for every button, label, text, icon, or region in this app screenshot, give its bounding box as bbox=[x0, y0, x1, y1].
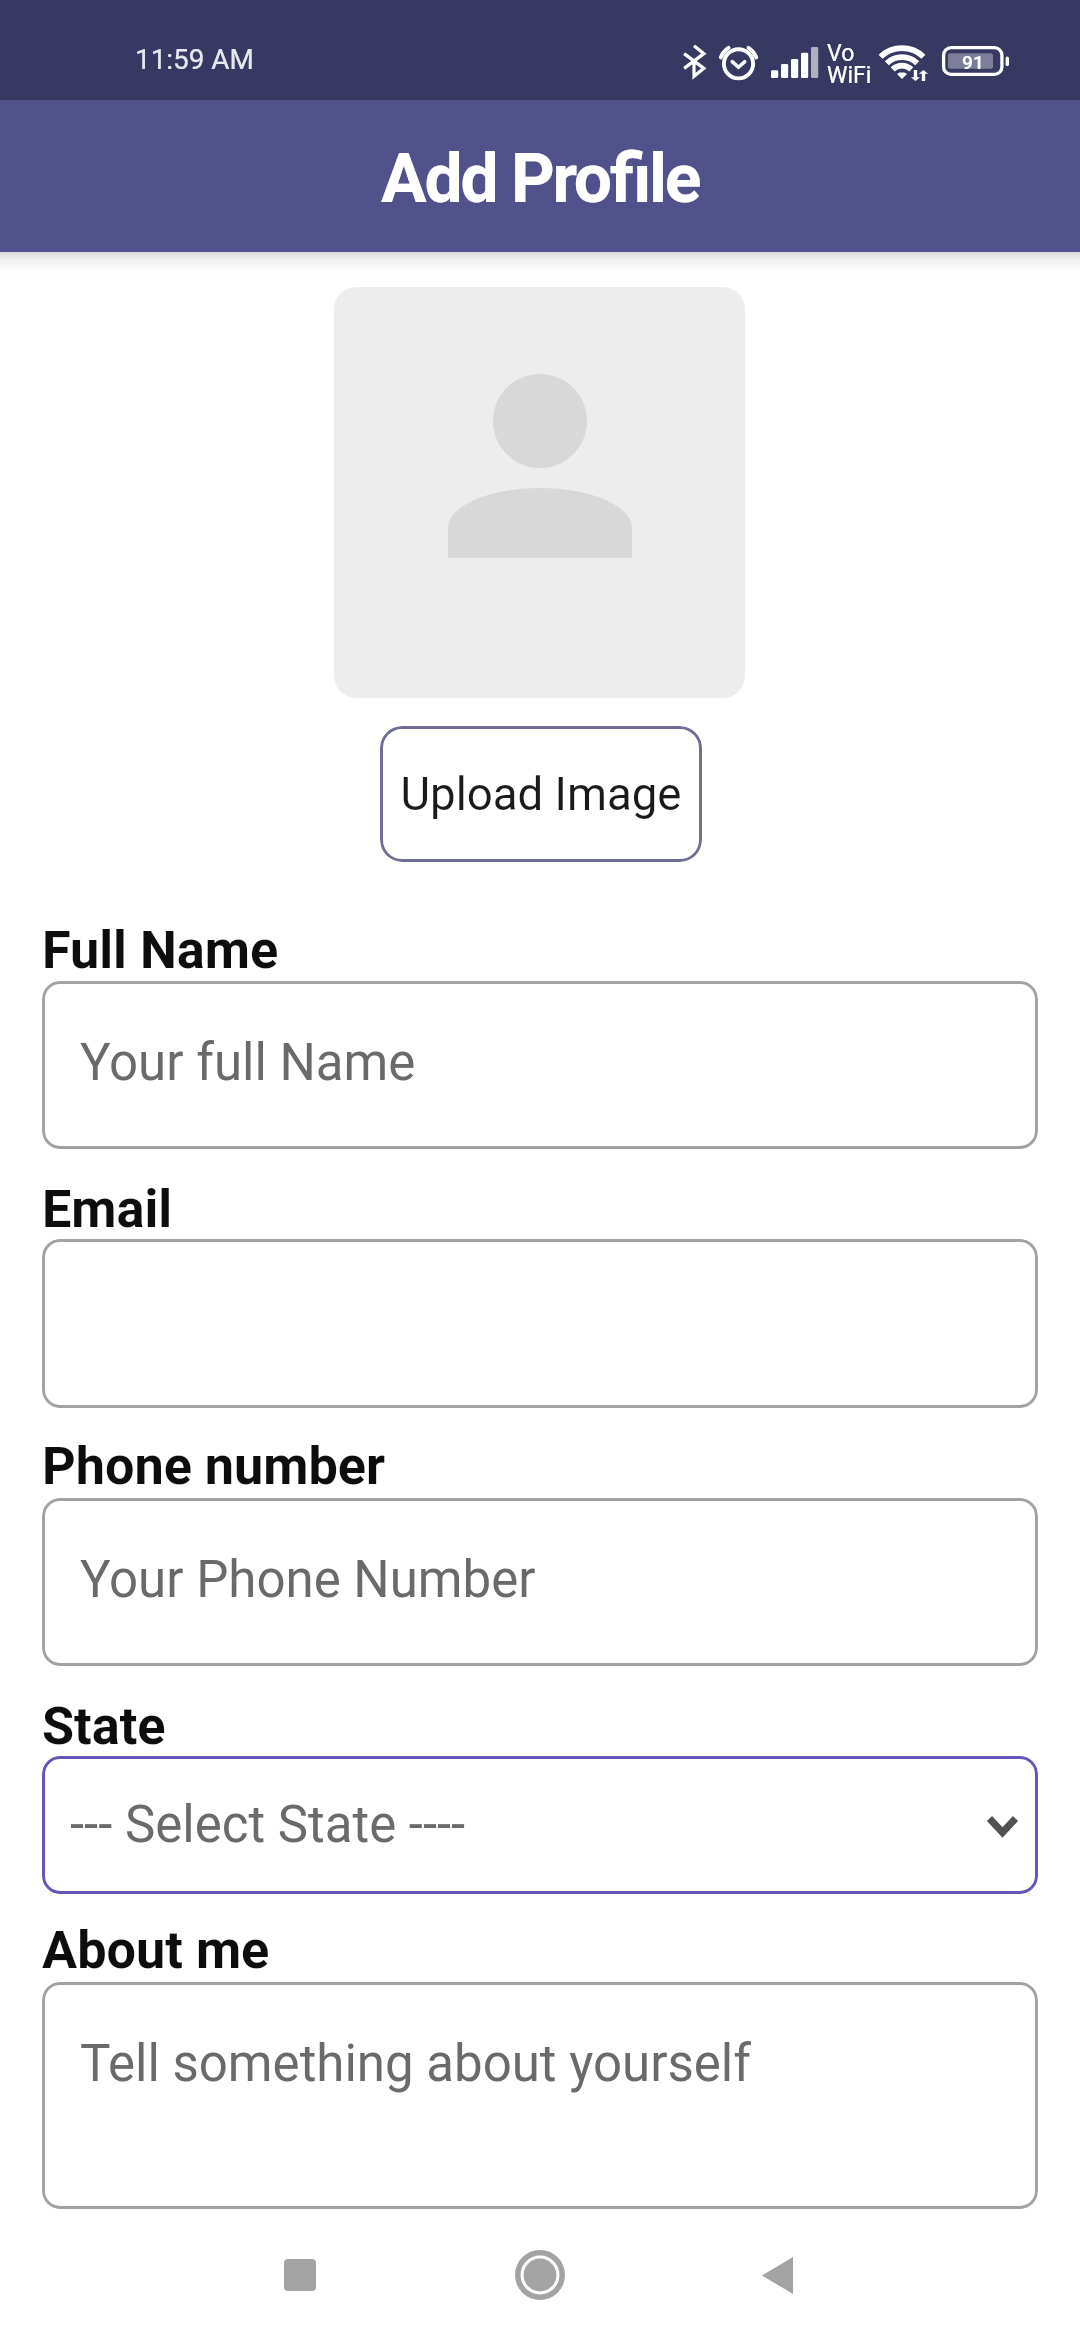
staticText: Full Name bbox=[42, 920, 279, 981]
staticText: Vo bbox=[827, 40, 855, 67]
staticText: Add Profile bbox=[381, 139, 700, 218]
staticText: --- Select State ---- bbox=[70, 1795, 466, 1855]
staticText: State bbox=[42, 1696, 166, 1757]
staticText: 91 bbox=[962, 51, 984, 74]
staticText: Phone number bbox=[42, 1436, 386, 1497]
button[interactable]: Back bbox=[717, 2215, 837, 2335]
staticText: Your full Name bbox=[80, 1033, 416, 1093]
button[interactable]: Tell something about yourself bbox=[42, 1982, 1038, 2209]
button[interactable]: Upload Image bbox=[380, 726, 702, 862]
button[interactable]: Recents bbox=[240, 2215, 360, 2335]
staticText: About me bbox=[42, 1920, 270, 1981]
staticText: WiFi bbox=[827, 62, 871, 89]
staticText: 11:59 AM bbox=[135, 43, 254, 76]
staticText: Upload Image bbox=[400, 768, 682, 821]
button[interactable]: Profile photo bbox=[334, 287, 745, 698]
staticText: Your Phone Number bbox=[80, 1550, 536, 1610]
staticText: Email bbox=[42, 1179, 173, 1240]
button[interactable] bbox=[42, 1239, 1038, 1408]
button[interactable]: Your Phone Number bbox=[42, 1498, 1038, 1666]
staticText: Tell something about yourself bbox=[80, 2034, 751, 2094]
button[interactable]: Your full Name bbox=[42, 981, 1038, 1149]
button[interactable]: --- Select State ---- bbox=[42, 1756, 1038, 1894]
button[interactable]: Home bbox=[480, 2215, 600, 2335]
